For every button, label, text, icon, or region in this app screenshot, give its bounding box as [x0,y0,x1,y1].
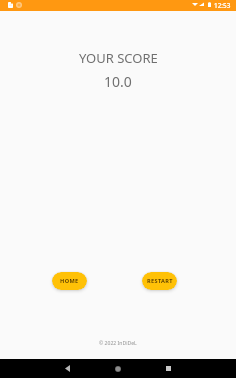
staticText: YOUR SCORE [79,49,158,67]
staticText: 12:53 [214,1,231,10]
button[interactable]: Home [108,359,128,378]
staticText: 10.0 [104,72,132,91]
staticText: RESTART [147,277,173,285]
button[interactable]: HOME [52,272,87,290]
button[interactable]: Recent apps [158,359,178,378]
button[interactable]: RESTART [142,272,177,290]
button[interactable]: Back [57,359,77,378]
staticText: © 2022 InDiDeL [99,340,137,347]
staticText: HOME [60,277,79,285]
